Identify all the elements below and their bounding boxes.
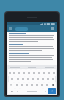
button[interactable]: More options bbox=[49, 25, 56, 32]
button[interactable] bbox=[20, 76, 25, 82]
button[interactable] bbox=[16, 69, 21, 76]
button[interactable] bbox=[51, 69, 56, 76]
button[interactable]: Navigation menu bbox=[7, 25, 14, 32]
button[interactable]: Backspace bbox=[49, 82, 56, 88]
button[interactable] bbox=[40, 76, 45, 82]
button[interactable] bbox=[50, 76, 55, 82]
button[interactable] bbox=[14, 82, 19, 88]
button[interactable] bbox=[41, 69, 46, 76]
button[interactable] bbox=[29, 82, 34, 88]
button[interactable] bbox=[9, 76, 15, 82]
button[interactable]: Search bbox=[15, 27, 28, 31]
button[interactable] bbox=[46, 69, 51, 76]
button[interactable] bbox=[45, 76, 50, 82]
button[interactable] bbox=[39, 82, 44, 88]
button[interactable] bbox=[12, 69, 16, 76]
button[interactable]: Symbols bbox=[8, 88, 15, 94]
button[interactable]: Shift bbox=[8, 82, 14, 88]
button[interactable]: Space bbox=[20, 88, 43, 94]
button[interactable] bbox=[24, 82, 29, 88]
button[interactable]: Enter bbox=[48, 88, 56, 94]
button[interactable]: Period bbox=[43, 88, 48, 94]
button[interactable] bbox=[30, 76, 35, 82]
button[interactable] bbox=[26, 69, 31, 76]
button[interactable] bbox=[31, 69, 36, 76]
button[interactable] bbox=[15, 76, 20, 82]
button[interactable]: Comma bbox=[15, 88, 20, 94]
button[interactable] bbox=[8, 69, 12, 76]
button[interactable] bbox=[19, 82, 24, 88]
button[interactable] bbox=[25, 76, 30, 82]
button[interactable] bbox=[21, 69, 26, 76]
button[interactable] bbox=[44, 82, 49, 88]
button[interactable] bbox=[34, 82, 39, 88]
button[interactable] bbox=[35, 76, 40, 82]
button[interactable] bbox=[36, 69, 41, 76]
